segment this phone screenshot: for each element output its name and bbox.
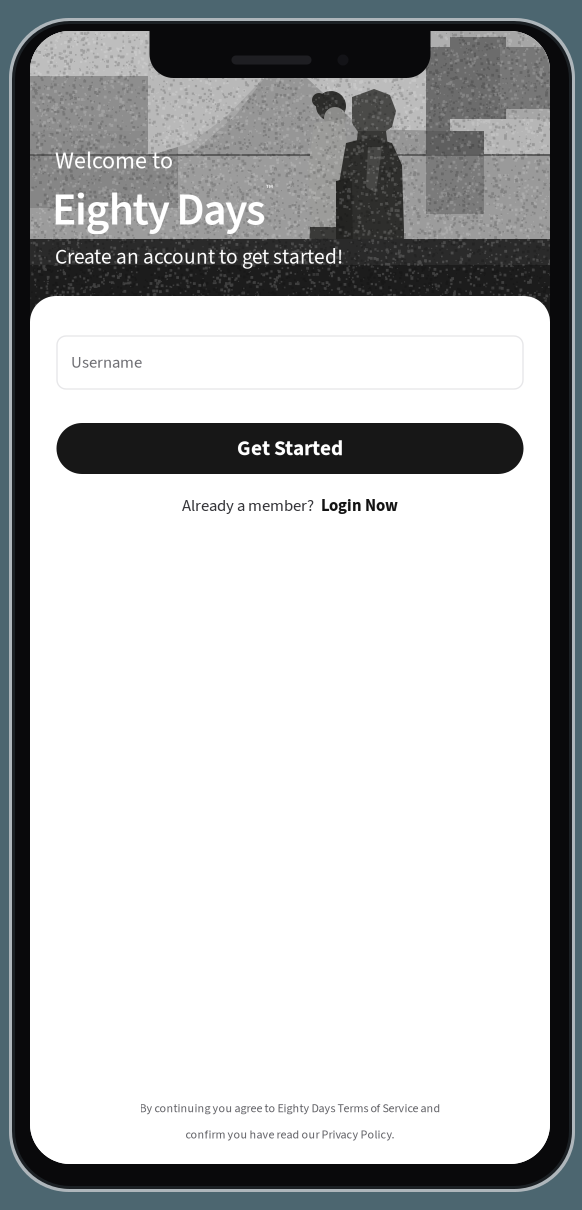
staticText: Eighty Days xyxy=(52,178,266,243)
staticText: Login Now xyxy=(321,494,398,518)
staticText: Username xyxy=(71,351,142,374)
staticText: confirm you have read our Privacy Policy… xyxy=(185,1126,394,1143)
button[interactable]: Get Started xyxy=(56,423,523,474)
staticText: Welcome to xyxy=(55,144,173,178)
staticText: ™ xyxy=(266,181,273,196)
staticText: Create an account to get started! xyxy=(55,242,343,272)
staticText: Already a member? xyxy=(182,494,314,518)
staticText: By continuing you agree to Eighty Days T… xyxy=(139,1100,440,1117)
button[interactable]: Username xyxy=(57,336,523,389)
staticText: Get Started xyxy=(237,433,343,464)
button[interactable]: Login Now xyxy=(321,494,398,518)
